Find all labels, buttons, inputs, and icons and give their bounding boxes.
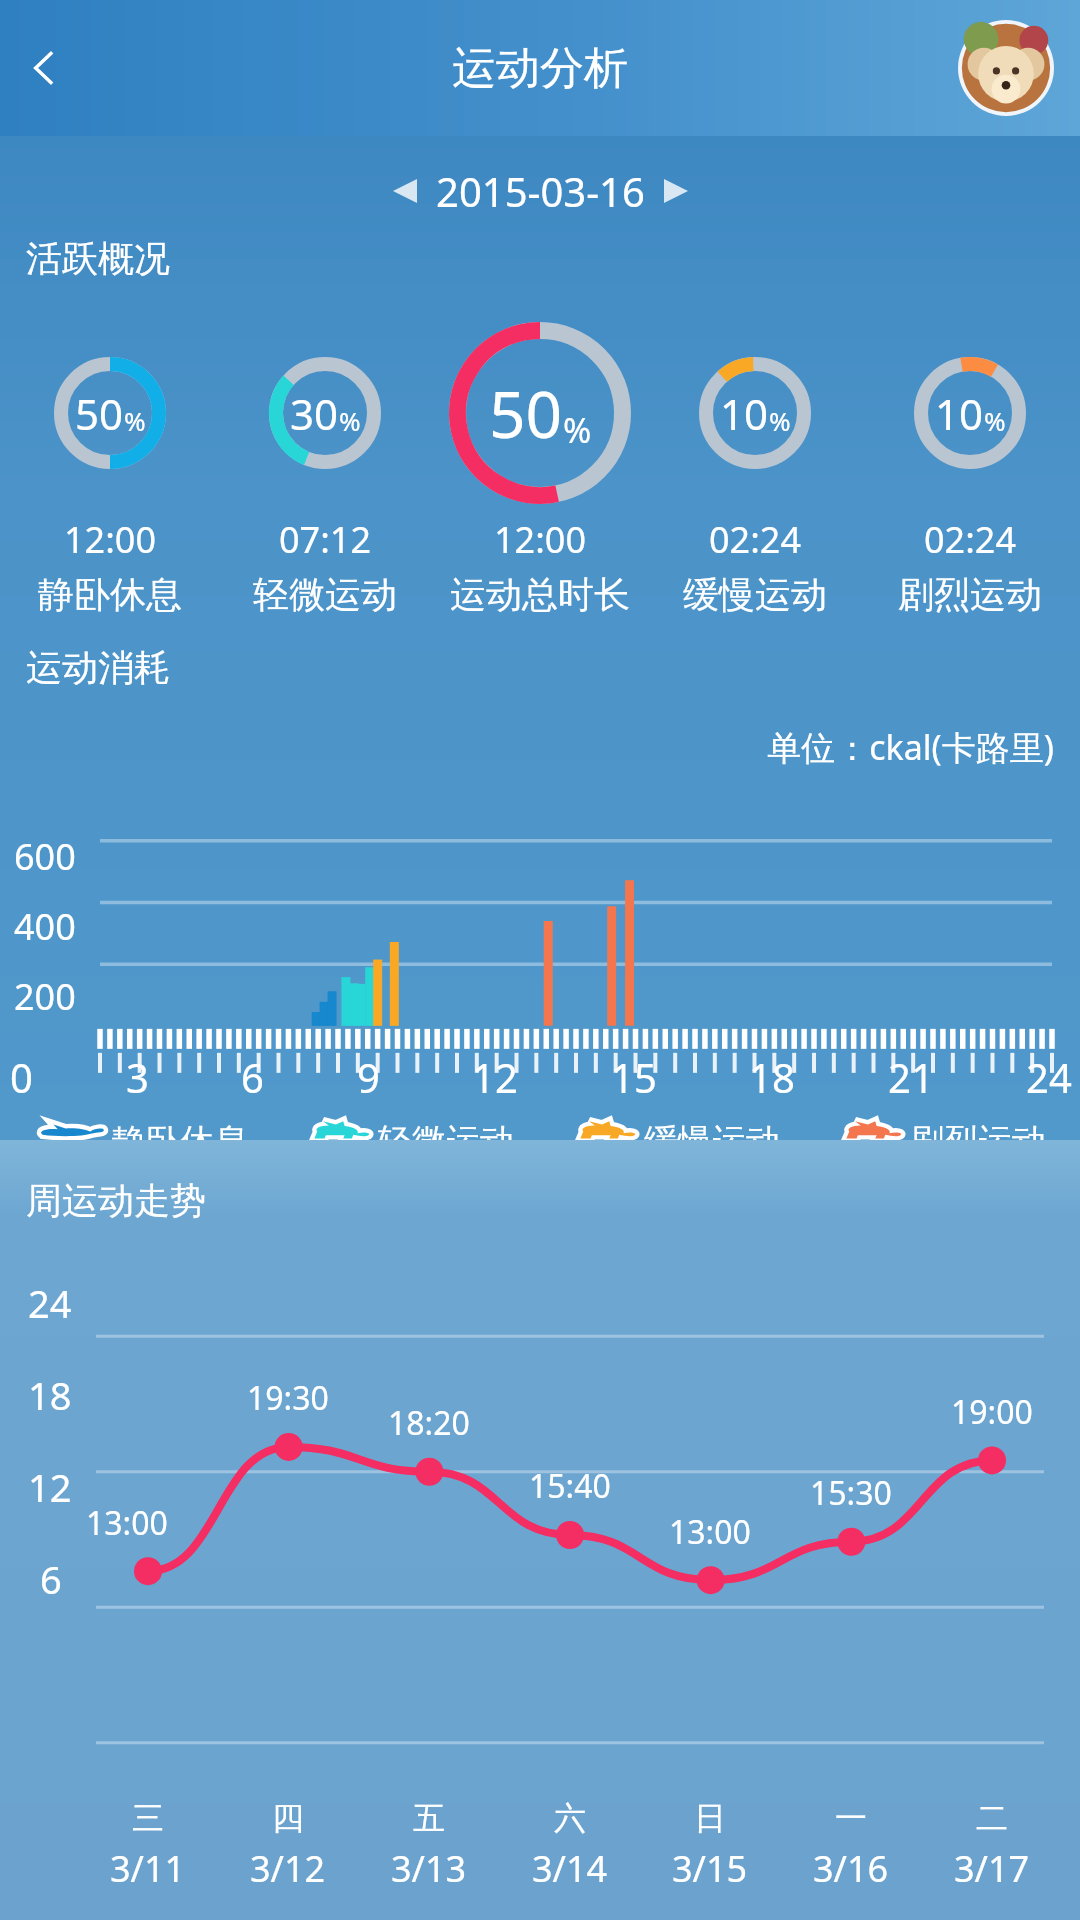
staticText: % <box>563 407 592 453</box>
staticText: 3/14 <box>532 1844 608 1893</box>
button[interactable]: 静卧休息 <box>34 1120 248 1140</box>
staticText: 缓慢运动 <box>683 572 827 617</box>
button[interactable]: 02:24 <box>870 515 1070 617</box>
staticText: 运动消耗 <box>26 645 170 690</box>
staticText: 02:24 <box>924 515 1017 564</box>
button[interactable]: 缓慢运动 <box>566 1120 780 1140</box>
staticText: 运动分析 <box>452 41 628 96</box>
staticText: 六 <box>554 1798 586 1838</box>
staticText: 三 <box>132 1798 164 1838</box>
staticText: 二 <box>976 1798 1008 1838</box>
button[interactable]: 六 <box>532 1798 608 1893</box>
staticText: 12 <box>472 1050 518 1104</box>
staticText: 15 <box>611 1050 657 1104</box>
button[interactable]: 10 <box>870 321 1070 505</box>
staticText: 12 <box>28 1461 72 1513</box>
staticText: 600 <box>14 832 76 881</box>
button[interactable]: 日 <box>672 1798 748 1893</box>
staticText: 运动总时长 <box>450 572 630 617</box>
staticText: 3/12 <box>250 1844 326 1893</box>
staticText: 剧烈运动 <box>910 1120 1046 1140</box>
button[interactable]: 12:00 <box>440 515 640 617</box>
staticText: 剧烈运动 <box>898 572 1042 617</box>
staticText: % <box>984 403 1006 438</box>
staticText: 02:24 <box>709 515 802 564</box>
staticText: % <box>339 403 361 438</box>
staticText: 3/17 <box>954 1844 1030 1893</box>
staticText: 30 <box>290 385 339 442</box>
staticText: 24 <box>1026 1050 1072 1104</box>
button[interactable]: 50 <box>10 321 210 505</box>
staticText: 6 <box>241 1050 264 1104</box>
staticText: 周运动走势 <box>26 1178 206 1223</box>
staticText: 19:30 <box>247 1376 329 1420</box>
staticText: 3/15 <box>672 1844 748 1893</box>
staticText: 活跃概况 <box>26 236 170 281</box>
staticText: % <box>124 403 146 438</box>
staticText: 五 <box>413 1798 445 1838</box>
button[interactable]: 剧烈运动 <box>832 1120 1046 1140</box>
button[interactable]: 10 <box>655 321 855 505</box>
staticText: 单位：ckal(卡路里) <box>0 724 1054 770</box>
staticText: 12:00 <box>494 515 587 564</box>
staticText: 21 <box>888 1050 934 1104</box>
staticText: 0 <box>10 1050 33 1104</box>
staticText: 50 <box>489 370 563 457</box>
button[interactable]: 五 <box>391 1798 467 1893</box>
button[interactable]: Next day <box>651 166 701 216</box>
button[interactable]: 12:00 <box>10 515 210 617</box>
button[interactable]: 四 <box>250 1798 326 1893</box>
staticText: 10 <box>720 385 769 442</box>
staticText: 一 <box>835 1798 867 1838</box>
button[interactable]: 02:24 <box>655 515 855 617</box>
staticText: 15:40 <box>529 1464 611 1508</box>
staticText: 07:12 <box>279 515 372 564</box>
staticText: 静卧休息 <box>112 1120 248 1140</box>
staticText: 18 <box>749 1050 795 1104</box>
staticText: 200 <box>14 972 76 1021</box>
staticText: 3/11 <box>110 1844 186 1893</box>
staticText: % <box>769 403 791 438</box>
button[interactable]: 二 <box>954 1798 1030 1893</box>
button[interactable]: 一 <box>813 1798 889 1893</box>
button[interactable]: 50 <box>440 321 640 505</box>
staticText: 3/13 <box>391 1844 467 1893</box>
staticText: 15:30 <box>810 1471 892 1515</box>
staticText: 轻微运动 <box>378 1120 514 1140</box>
staticText: 轻微运动 <box>253 572 397 617</box>
staticText: 四 <box>272 1798 304 1838</box>
staticText: 2015-03-16 <box>436 164 645 218</box>
staticText: 3 <box>126 1050 149 1104</box>
staticText: 12:00 <box>64 515 157 564</box>
staticText: 18:20 <box>388 1401 470 1445</box>
button[interactable]: Profile <box>958 20 1054 116</box>
staticText: 13:00 <box>669 1510 751 1554</box>
staticText: 日 <box>694 1798 726 1838</box>
staticText: 400 <box>14 902 76 951</box>
button[interactable]: Previous day <box>380 166 430 216</box>
staticText: 缓慢运动 <box>644 1120 780 1140</box>
staticText: 18 <box>28 1369 72 1421</box>
staticText: 50 <box>75 385 124 442</box>
button[interactable]: 轻微运动 <box>300 1120 514 1140</box>
staticText: 10 <box>935 385 984 442</box>
staticText: 静卧休息 <box>38 572 182 617</box>
staticText: 19:00 <box>951 1390 1033 1434</box>
staticText: 13:00 <box>86 1501 168 1545</box>
staticText: 6 <box>40 1553 62 1605</box>
button[interactable]: 三 <box>110 1798 186 1893</box>
staticText: 24 <box>28 1277 72 1329</box>
button[interactable]: 07:12 <box>225 515 425 617</box>
button[interactable]: Back <box>6 29 84 107</box>
staticText: 9 <box>357 1050 380 1104</box>
button[interactable]: 30 <box>225 321 425 505</box>
staticText: 3/16 <box>813 1844 889 1893</box>
